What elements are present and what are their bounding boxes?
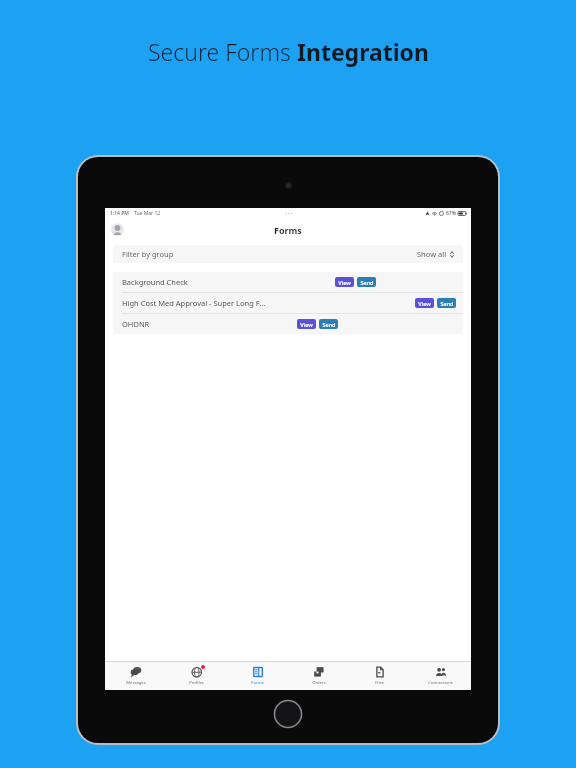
staticText: Forms bbox=[251, 680, 264, 686]
staticText: Background Check bbox=[122, 277, 188, 287]
staticText: Integration bbox=[297, 36, 429, 67]
button[interactable]: View bbox=[415, 298, 434, 308]
button[interactable]: Send bbox=[357, 277, 376, 287]
staticText: Messages bbox=[126, 680, 146, 686]
button[interactable]: High Cost Med Approval - Super Long Form… bbox=[113, 293, 463, 313]
button[interactable]: Profile bbox=[111, 223, 124, 236]
staticText: Profiles bbox=[189, 680, 204, 686]
button[interactable]: Filter by group bbox=[113, 245, 463, 263]
staticText: Secure Forms bbox=[148, 36, 297, 67]
staticText: Tue Mar 12 bbox=[134, 210, 161, 217]
button[interactable]: Messages bbox=[105, 663, 166, 689]
button[interactable]: Forms bbox=[227, 663, 288, 689]
staticText: Send bbox=[360, 279, 374, 286]
staticText: Connections bbox=[428, 680, 453, 686]
button[interactable]: Orders bbox=[288, 663, 349, 689]
staticText: 67% bbox=[446, 210, 456, 217]
button[interactable]: View bbox=[335, 277, 354, 287]
button[interactable]: Send bbox=[437, 298, 456, 308]
staticText: High Cost Med Approval - Super Long Form… bbox=[122, 298, 268, 308]
staticText: Send bbox=[440, 300, 454, 307]
staticText: Forms bbox=[274, 224, 302, 236]
staticText: OHDNR bbox=[122, 319, 150, 329]
button[interactable]: Profiles bbox=[166, 663, 227, 689]
button[interactable]: Background Check bbox=[113, 272, 463, 292]
button[interactable]: Connections bbox=[410, 663, 471, 689]
staticText: 1:14 PM bbox=[110, 210, 129, 217]
staticText: Send bbox=[322, 321, 336, 328]
staticText: Show all bbox=[417, 249, 447, 259]
button[interactable]: View bbox=[297, 319, 316, 329]
staticText: Files bbox=[375, 680, 384, 686]
button[interactable]: Files bbox=[349, 663, 410, 689]
staticText: Filter by group bbox=[122, 249, 174, 259]
button[interactable]: Home bbox=[273, 699, 303, 729]
button[interactable]: OHDNR bbox=[113, 314, 463, 334]
staticText: View bbox=[418, 300, 431, 307]
staticText: View bbox=[338, 279, 351, 286]
button[interactable]: Send bbox=[319, 319, 338, 329]
staticText: View bbox=[300, 321, 313, 328]
staticText: Orders bbox=[312, 680, 326, 686]
